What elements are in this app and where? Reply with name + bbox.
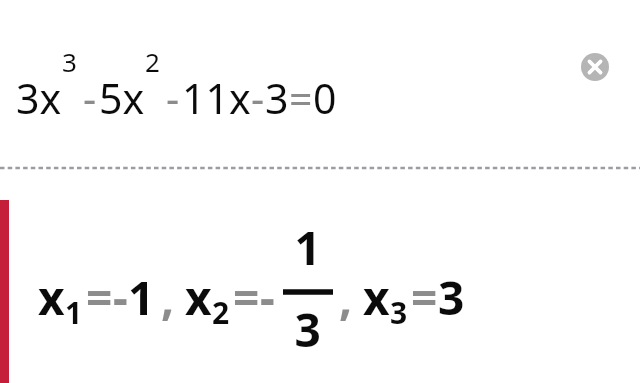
button[interactable]: Close <box>581 53 609 81</box>
